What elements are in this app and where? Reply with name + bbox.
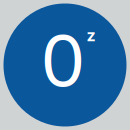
staticText: O — [41, 11, 85, 107]
staticText: z — [86, 26, 95, 45]
button[interactable]: Oz — [0, 0, 130, 130]
